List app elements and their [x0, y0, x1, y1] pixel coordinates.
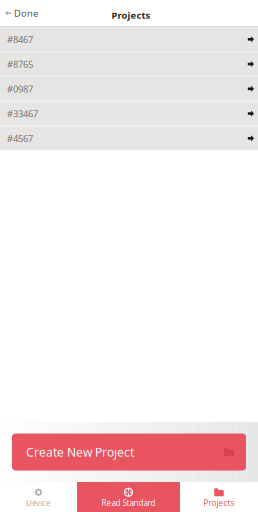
button[interactable]: Projects: [180, 482, 258, 512]
button[interactable]: Create New Project: [12, 433, 246, 470]
staticText: #8765: [7, 58, 33, 70]
staticText: #0987: [7, 83, 33, 95]
button[interactable]: #0987: [0, 77, 258, 101]
staticText: Read Standard: [101, 497, 155, 508]
staticText: Projects: [203, 497, 234, 508]
staticText: #4567: [7, 132, 33, 144]
button[interactable]: Read Standard: [77, 482, 180, 512]
button[interactable]: #33467: [0, 102, 258, 125]
staticText: #8467: [7, 33, 33, 45]
button[interactable]: Device: [0, 482, 77, 512]
staticText: Done: [14, 7, 38, 19]
button[interactable]: #8467: [0, 27, 258, 51]
button[interactable]: #4567: [0, 126, 258, 150]
button[interactable]: Done: [0, 0, 46, 26]
staticText: Device: [26, 497, 51, 508]
staticText: Projects: [111, 9, 150, 21]
button[interactable]: #8765: [0, 52, 258, 76]
staticText: Create New Project: [26, 444, 134, 460]
staticText: #33467: [7, 107, 38, 120]
